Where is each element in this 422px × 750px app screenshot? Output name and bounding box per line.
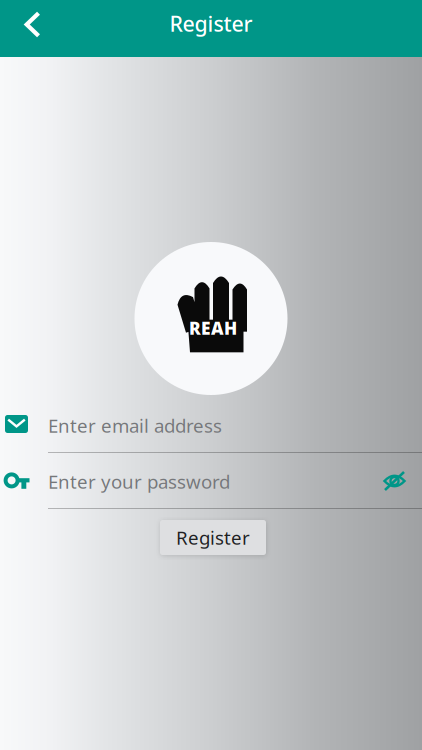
staticText: Register [169, 9, 252, 38]
button[interactable]: Register [160, 520, 266, 555]
staticText: Enter your password [48, 469, 230, 494]
staticText: Register [176, 525, 250, 550]
staticText: REAH [189, 316, 237, 339]
button[interactable]: Back [9, 0, 57, 53]
button[interactable]: Show password [374, 461, 415, 501]
staticText: Enter email address [48, 413, 222, 438]
